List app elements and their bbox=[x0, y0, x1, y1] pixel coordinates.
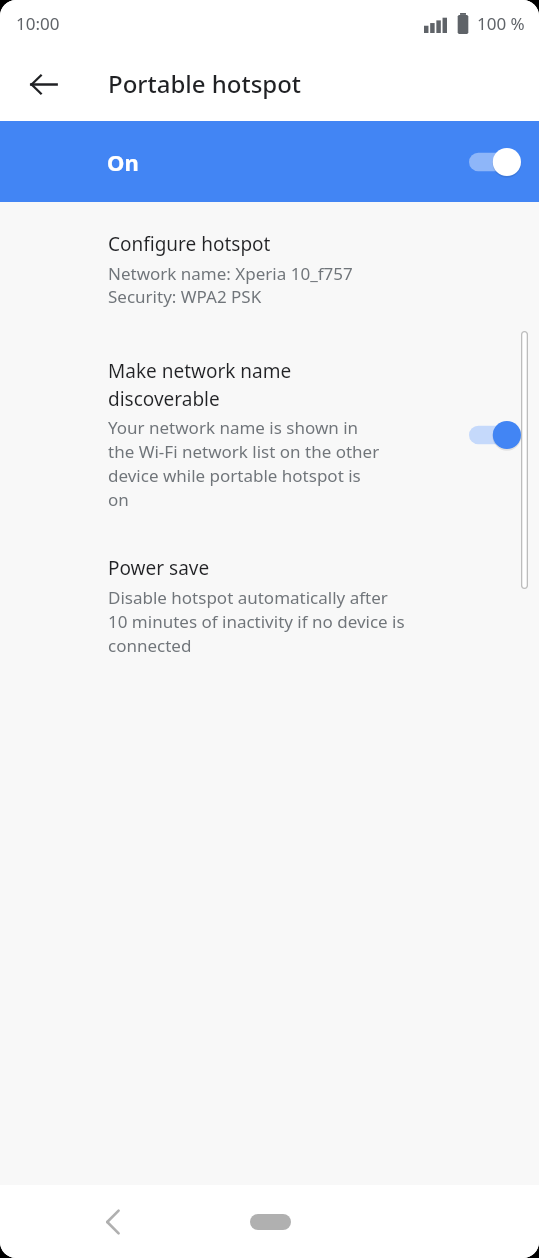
staticText: 10:00 bbox=[16, 12, 60, 35]
staticText: Portable hotspot bbox=[108, 67, 302, 100]
staticText: Security: WPA2 PSK bbox=[108, 285, 262, 308]
staticText: On bbox=[107, 147, 139, 177]
button[interactable]: Home bbox=[235, 1202, 305, 1242]
button[interactable]: Power save bbox=[0, 555, 539, 657]
staticText: Your network name is shown in the Wi-Fi … bbox=[108, 416, 380, 511]
button[interactable]: Back bbox=[85, 1194, 141, 1250]
staticText: Configure hotspot bbox=[108, 231, 271, 257]
button[interactable]: On bbox=[0, 121, 539, 202]
button[interactable]: Configure hotspot bbox=[0, 229, 539, 310]
staticText: Power save bbox=[108, 555, 210, 581]
button[interactable]: Make network name discoverable bbox=[0, 358, 539, 511]
staticText: Make network name discoverable bbox=[108, 358, 292, 412]
staticText: Network name: Xperia 10_f757 bbox=[108, 262, 353, 285]
button[interactable]: Back bbox=[15, 56, 71, 112]
staticText: 100 % bbox=[477, 12, 525, 35]
staticText: Disable hotspot automatically after 10 m… bbox=[108, 586, 405, 657]
